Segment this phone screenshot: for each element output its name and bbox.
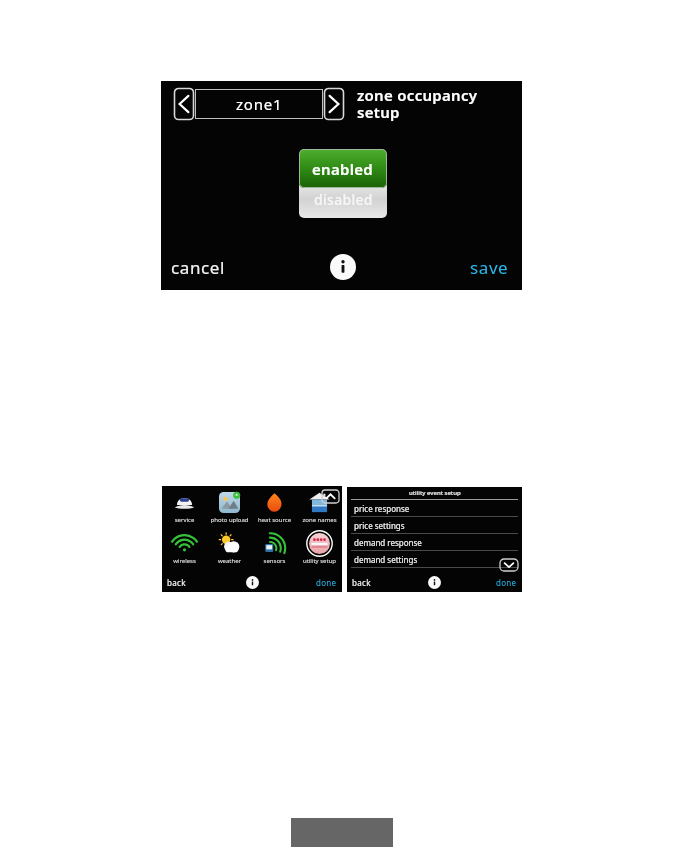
staticText: utility setup	[297, 557, 342, 565]
button[interactable]: back	[167, 577, 186, 588]
staticText: utility event setup	[409, 489, 461, 497]
button[interactable]: service	[162, 489, 207, 528]
staticText: demand response	[354, 537, 422, 548]
button[interactable]: utility setup	[297, 530, 342, 569]
staticText: price settings	[354, 520, 405, 531]
button[interactable]: Next zone	[323, 87, 345, 121]
button[interactable]: back	[352, 577, 371, 588]
button[interactable]: done	[496, 577, 517, 588]
staticText: wireless	[162, 557, 207, 565]
button[interactable]: photo upload	[207, 489, 252, 528]
button[interactable]: zone1	[195, 89, 323, 119]
staticText: zone1	[236, 94, 283, 114]
button[interactable]: demand settings	[347, 551, 522, 568]
button[interactable]: Information	[246, 576, 259, 589]
staticText: done	[316, 577, 337, 588]
button[interactable]: done	[316, 577, 337, 588]
button[interactable]: enabled	[299, 149, 387, 188]
staticText: zone names	[297, 516, 342, 524]
button[interactable]: demand response	[347, 534, 522, 551]
staticText: disabled	[314, 190, 373, 209]
staticText: back	[167, 577, 186, 588]
staticText: enabled	[312, 159, 374, 179]
button[interactable]: Previous zone	[173, 87, 195, 121]
staticText: zone occupancy setup	[357, 85, 522, 123]
staticText: service	[162, 516, 207, 524]
staticText: sensors	[252, 557, 297, 565]
staticText: photo upload	[207, 516, 252, 524]
staticText: heat source	[252, 516, 297, 524]
staticText: save	[470, 256, 509, 279]
button[interactable]: sensors	[252, 530, 297, 569]
button[interactable]: Scroll up	[321, 489, 340, 504]
staticText: price response	[354, 503, 410, 514]
button[interactable]: Information	[428, 576, 441, 589]
button[interactable]: cancel	[171, 256, 225, 279]
button[interactable]: price settings	[347, 517, 522, 534]
staticText: done	[496, 577, 517, 588]
button[interactable]: wireless	[162, 530, 207, 569]
button[interactable]: Information	[330, 254, 356, 280]
staticText: cancel	[171, 256, 225, 279]
button[interactable]: heat source	[252, 489, 297, 528]
staticText: weather	[207, 557, 252, 565]
button[interactable]: Scroll down	[499, 558, 519, 572]
button[interactable]: zone names	[297, 489, 342, 528]
button[interactable]: price response	[347, 500, 522, 517]
button[interactable]: save	[470, 256, 509, 279]
button[interactable]: disabled	[299, 180, 387, 218]
button[interactable]: weather	[207, 530, 252, 569]
staticText: demand settings	[354, 554, 418, 565]
staticText: back	[352, 577, 371, 588]
